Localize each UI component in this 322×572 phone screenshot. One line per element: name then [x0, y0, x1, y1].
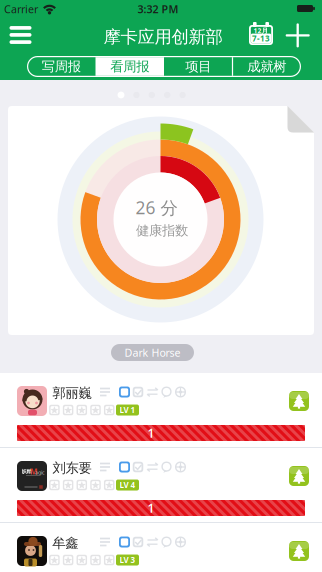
- button[interactable]: 看周报: [97, 57, 163, 76]
- staticText: 妖精: [21, 468, 31, 475]
- staticText: 写周报: [42, 58, 81, 75]
- button[interactable]: Menu: [9, 26, 31, 44]
- staticText: Dark Horse: [124, 345, 180, 360]
- staticText: 牟鑫: [52, 535, 78, 551]
- staticText: 1: [147, 500, 154, 516]
- staticText: 项目: [185, 58, 211, 75]
- staticText: M: [30, 466, 38, 477]
- button[interactable]: Calendar week: [249, 22, 273, 45]
- staticText: Carrier: [4, 2, 38, 16]
- staticText: 成就树: [247, 58, 286, 75]
- staticText: 1: [147, 425, 154, 441]
- button[interactable]: 项目: [165, 57, 231, 76]
- staticText: 看周报: [110, 58, 149, 75]
- staticText: 12月: [253, 26, 268, 35]
- staticText: 刘东要: [52, 460, 91, 476]
- staticText: 26 分: [135, 196, 177, 219]
- button[interactable]: 牟鑫: [0, 523, 322, 572]
- button[interactable]: 成就树: [234, 57, 300, 76]
- staticText: 7-13: [252, 33, 270, 44]
- staticText: 3:32 PM: [137, 2, 178, 16]
- staticText: 郭丽巍: [52, 385, 91, 401]
- button[interactable]: Tree: [289, 541, 309, 561]
- button[interactable]: Add: [286, 23, 310, 47]
- staticText: LV 3: [119, 555, 135, 565]
- staticText: LV 1: [119, 405, 135, 415]
- button[interactable]: 写周报: [28, 57, 94, 76]
- button[interactable]: 妖精: [0, 448, 322, 500]
- staticText: agic: [35, 469, 45, 476]
- button[interactable]: Tree: [289, 466, 309, 486]
- staticText: 健康指数: [136, 222, 188, 239]
- staticText: 摩卡应用创新部: [103, 26, 222, 48]
- button[interactable]: 郭丽巍: [0, 373, 322, 425]
- button[interactable]: Tree: [289, 391, 309, 411]
- staticText: LV 4: [119, 480, 135, 490]
